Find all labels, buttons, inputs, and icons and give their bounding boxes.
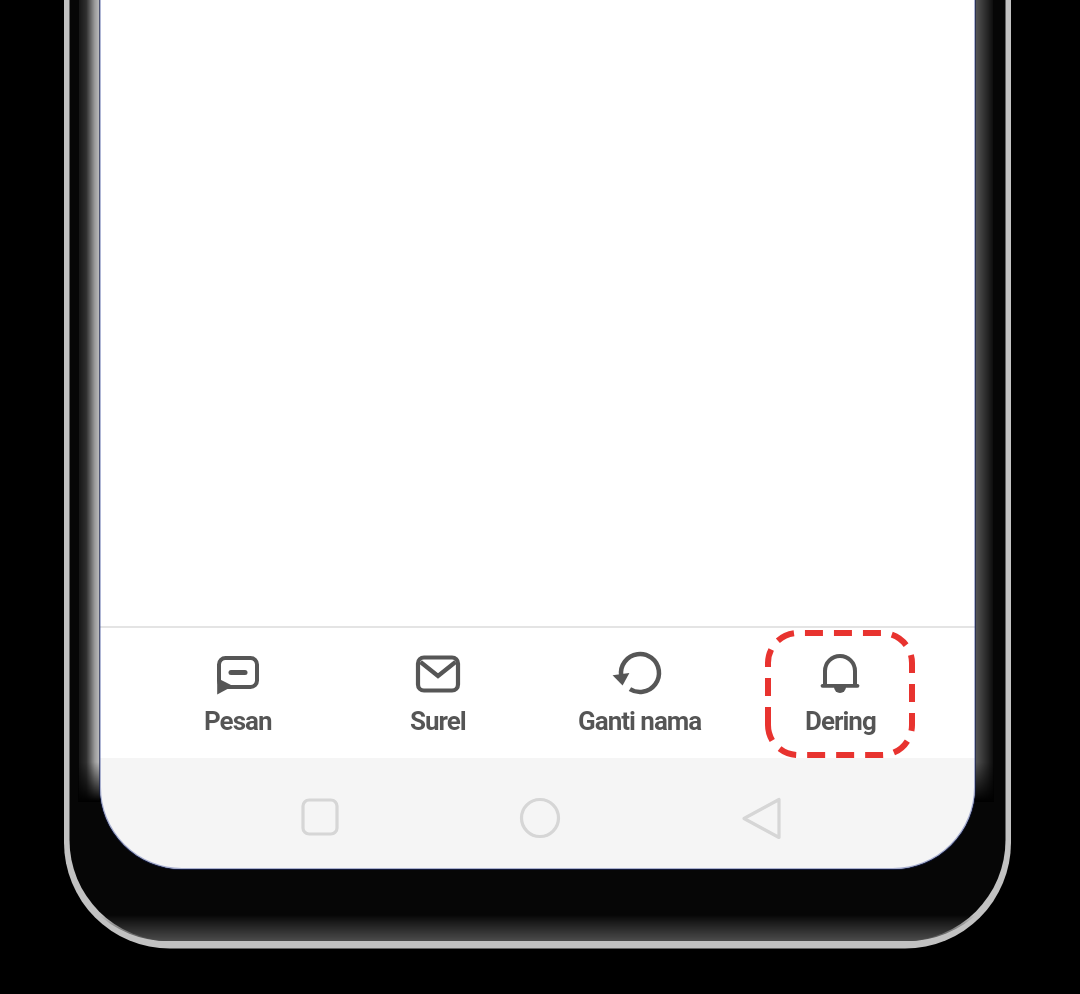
button[interactable]: Pesan [148, 628, 328, 758]
staticText: Surel [410, 706, 466, 736]
staticText: Dering [805, 706, 876, 736]
button[interactable]: Ganti nama [550, 628, 730, 758]
button[interactable]: Dering [750, 628, 930, 758]
button[interactable] [301, 798, 339, 838]
button[interactable] [742, 798, 780, 838]
button[interactable] [521, 798, 559, 838]
staticText: Ganti nama [578, 706, 702, 736]
button[interactable]: Surel [348, 628, 528, 758]
staticText: Pesan [204, 706, 272, 736]
